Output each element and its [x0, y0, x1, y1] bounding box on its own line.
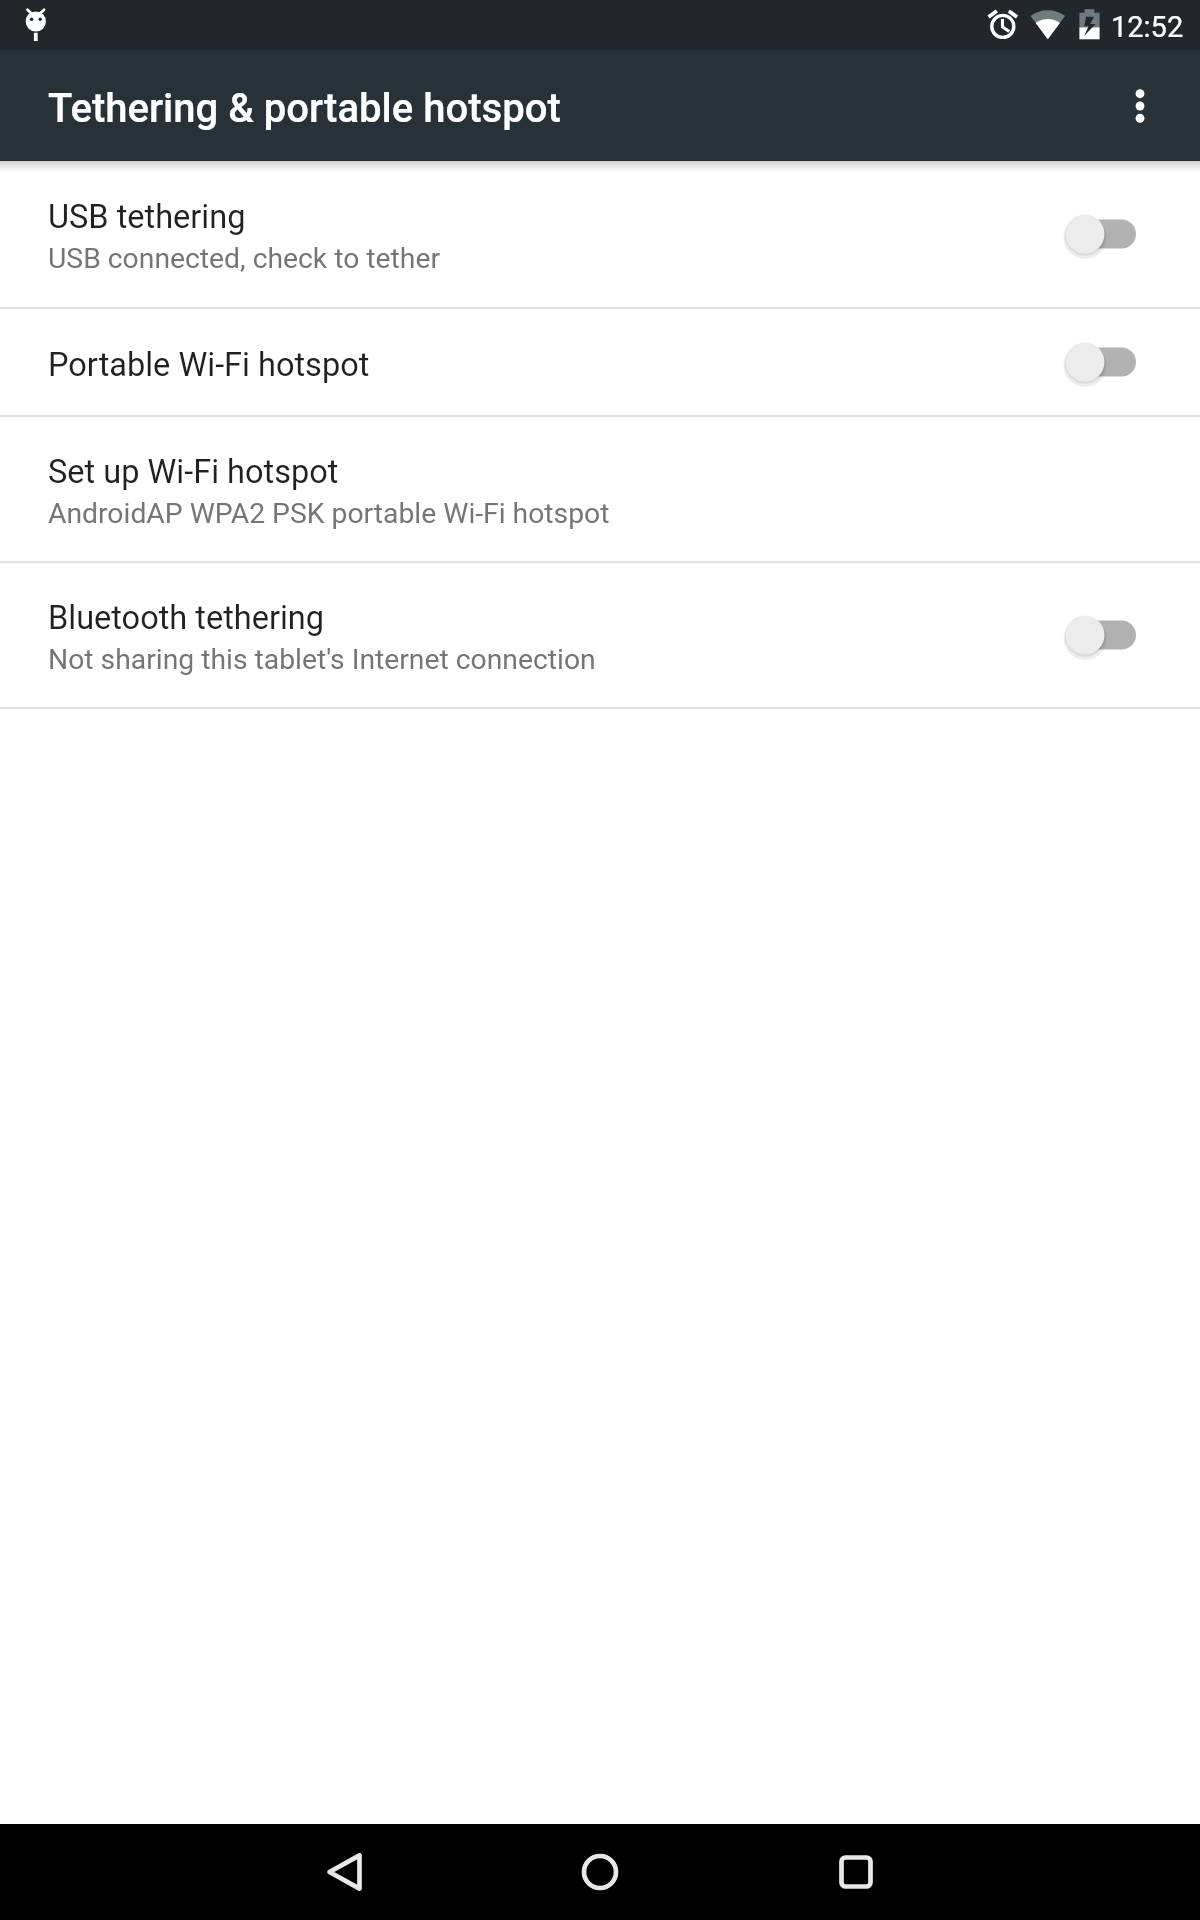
button[interactable]: Back [255, 1824, 435, 1920]
staticText: USB tethering [48, 198, 246, 236]
button[interactable]: Bluetooth tethering [0, 563, 1200, 707]
button[interactable]: More options [1079, 50, 1200, 161]
staticText: Not sharing this tablet's Internet conne… [48, 643, 596, 676]
button[interactable]: Recent apps [766, 1824, 946, 1920]
button[interactable]: Bluetooth tethering switch [1047, 563, 1200, 707]
staticText: Portable Wi-Fi hotspot [48, 346, 370, 384]
staticText: Set up Wi-Fi hotspot [48, 453, 339, 491]
button[interactable]: USB tethering [0, 161, 1200, 307]
button[interactable]: Portable Wi-Fi hotspot [0, 309, 1200, 415]
button[interactable]: Home [510, 1824, 690, 1920]
button[interactable]: Portable Wi-Fi hotspot switch [1047, 309, 1200, 415]
staticText: AndroidAP WPA2 PSK portable Wi-Fi hotspo… [48, 497, 610, 530]
staticText: Tethering & portable hotspot [48, 85, 561, 132]
staticText: USB connected, check to tether [48, 242, 441, 275]
staticText: 12:52 [1111, 10, 1184, 44]
button[interactable]: Set up Wi-Fi hotspot [0, 417, 1200, 561]
button[interactable]: USB tethering switch [1047, 161, 1200, 307]
staticText: Bluetooth tethering [48, 599, 325, 637]
